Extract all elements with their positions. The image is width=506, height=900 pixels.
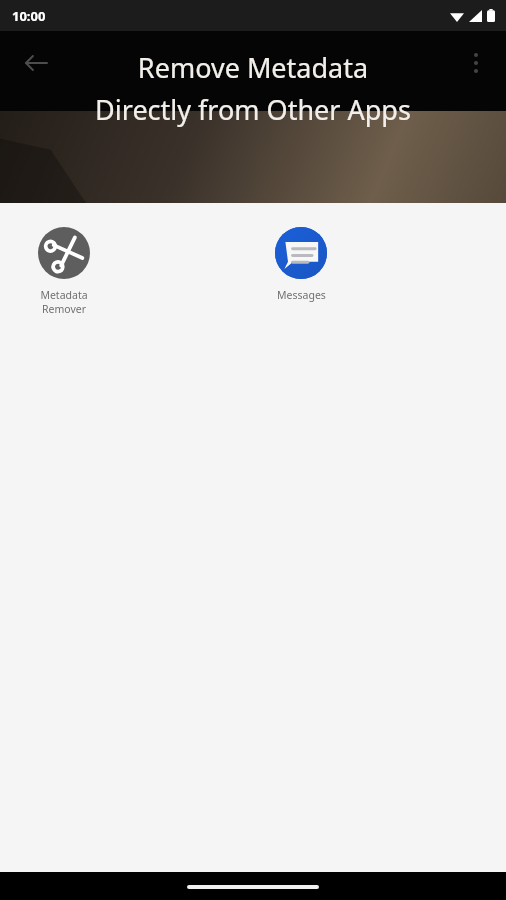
button[interactable]: Metadata Remover — [17, 223, 111, 320]
staticText: Metadata Remover — [40, 288, 88, 316]
button[interactable]: Home — [187, 885, 319, 889]
staticText: Messages — [277, 288, 326, 302]
button[interactable]: Back — [14, 41, 58, 85]
staticText: Remove Metadata Directly from Other Apps — [0, 49, 506, 128]
button[interactable]: Messages — [254, 223, 348, 306]
staticText: 10:00 — [12, 7, 46, 25]
button[interactable]: More options — [454, 41, 498, 85]
